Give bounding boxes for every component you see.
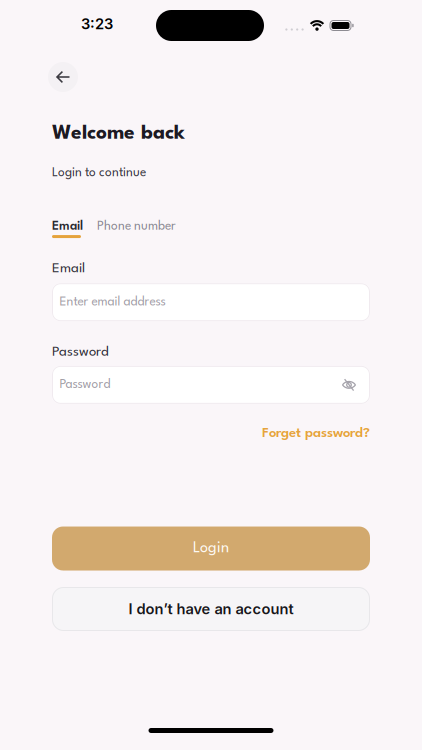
staticText: Email [52,221,83,233]
button[interactable]: Password [52,366,370,404]
button[interactable]: Enter email address [52,283,370,321]
staticText: Password [59,379,110,391]
button[interactable]: Back [48,62,78,92]
button[interactable]: I don’t have an account [52,587,370,631]
button[interactable]: Login [52,526,370,570]
staticText: Login to continue [52,167,146,179]
staticText: Welcome back [52,124,185,143]
staticText: Phone number [97,221,176,233]
button[interactable]: Forget password? [262,427,370,440]
staticText: Email [52,262,85,275]
button[interactable]: Show password [341,377,370,393]
staticText: Forget password? [262,427,370,440]
staticText: 3:23 [81,15,113,33]
staticText: Login [193,541,229,556]
staticText: Password [52,346,109,359]
button[interactable]: Email [52,221,83,238]
staticText: I don’t have an account [128,600,293,618]
button[interactable]: Phone number [97,221,176,233]
staticText: Enter email address [59,296,165,308]
